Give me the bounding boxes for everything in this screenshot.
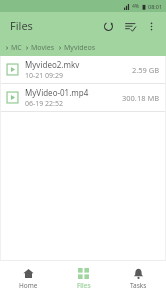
staticText: 2.59 GB bbox=[132, 65, 160, 75]
staticText: Files bbox=[77, 281, 91, 290]
button[interactable]: Sort and select bbox=[119, 15, 141, 37]
button[interactable]: More options bbox=[141, 16, 161, 36]
staticText: Home bbox=[19, 281, 38, 290]
staticText: 08:01 bbox=[148, 3, 163, 10]
button[interactable]: Myvideo2.mkv bbox=[0, 56, 166, 83]
button[interactable]: Tasks bbox=[111, 261, 166, 296]
staticText: 06-19 22:52 bbox=[25, 99, 63, 109]
staticText: 4% bbox=[132, 3, 140, 10]
staticText: MyVideo-01.mp4 bbox=[25, 87, 89, 98]
button[interactable]: MC bbox=[11, 43, 22, 53]
button[interactable]: Home bbox=[0, 261, 56, 296]
staticText: 300.18 MB bbox=[122, 93, 160, 103]
staticText: Tasks bbox=[130, 281, 147, 290]
button[interactable]: Myvideos bbox=[64, 43, 96, 53]
staticText: Files bbox=[10, 18, 33, 33]
staticText: 10-21 09:29 bbox=[25, 71, 63, 81]
button[interactable]: Files bbox=[56, 261, 111, 296]
button[interactable]: Refresh bbox=[97, 15, 119, 37]
staticText: Myvideo2.mkv bbox=[25, 59, 80, 70]
button[interactable]: MyVideo-01.mp4 bbox=[0, 84, 166, 111]
button[interactable]: Movies bbox=[31, 43, 55, 53]
